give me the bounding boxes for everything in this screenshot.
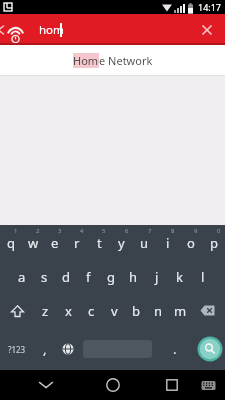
button[interactable]: p: [202, 225, 225, 260]
button[interactable]: f: [77, 260, 99, 294]
button[interactable]: [199, 22, 215, 38]
button[interactable]: [162, 375, 182, 395]
staticText: ,: [43, 340, 47, 358]
button[interactable]: .: [156, 328, 194, 370]
staticText: q: [7, 234, 15, 252]
staticText: 9: [194, 227, 198, 235]
button[interactable]: [36, 375, 56, 395]
staticText: d: [62, 268, 70, 286]
staticText: t: [97, 234, 102, 252]
button[interactable]: [191, 294, 225, 328]
staticText: .: [173, 340, 177, 358]
staticText: r: [74, 234, 80, 252]
staticText: 2: [36, 227, 40, 235]
staticText: a: [18, 268, 26, 286]
button[interactable]: h: [122, 260, 145, 294]
staticText: e Network: [99, 53, 153, 68]
staticText: 0: [217, 227, 221, 235]
button[interactable]: w: [22, 225, 44, 260]
staticText: b: [132, 302, 140, 320]
button[interactable]: n: [147, 294, 169, 328]
staticText: s: [41, 268, 48, 286]
button[interactable]: k: [168, 260, 191, 294]
button[interactable]: a: [11, 260, 33, 294]
staticText: l: [201, 268, 205, 286]
button[interactable]: i: [156, 225, 179, 260]
staticText: o: [187, 234, 195, 252]
button[interactable]: m: [169, 294, 191, 328]
button[interactable]: s: [33, 260, 55, 294]
staticText: c: [88, 302, 95, 320]
staticText: x: [65, 302, 72, 320]
button[interactable]: g: [99, 260, 122, 294]
button[interactable]: d: [55, 260, 77, 294]
button[interactable]: ,: [34, 328, 56, 370]
staticText: k: [176, 268, 183, 286]
staticText: y: [118, 234, 125, 252]
button[interactable]: t: [88, 225, 110, 260]
button[interactable]: [79, 328, 156, 370]
staticText: w: [28, 234, 39, 252]
staticText: ?123: [8, 344, 26, 355]
staticText: n: [154, 302, 163, 320]
staticText: e: [51, 234, 59, 252]
button[interactable]: [103, 375, 123, 395]
staticText: g: [107, 268, 115, 286]
button[interactable]: [199, 376, 217, 394]
button[interactable]: [194, 328, 225, 370]
staticText: u: [140, 234, 149, 252]
button[interactable]: j: [145, 260, 168, 294]
staticText: 5: [102, 227, 106, 235]
button[interactable]: ?123: [0, 328, 34, 370]
staticText: 8: [171, 227, 175, 235]
staticText: h: [129, 268, 138, 286]
button[interactable]: c: [80, 294, 103, 328]
staticText: 14:17: [198, 1, 222, 13]
staticText: 3: [58, 227, 62, 235]
button[interactable]: x: [57, 294, 80, 328]
staticText: Hom: [73, 53, 99, 68]
staticText: 7: [148, 227, 152, 235]
button[interactable]: y: [110, 225, 133, 260]
button[interactable]: q: [0, 225, 22, 260]
staticText: hom: [39, 22, 64, 38]
staticText: j: [155, 268, 159, 286]
staticText: m: [174, 302, 187, 320]
button[interactable]: u: [133, 225, 156, 260]
button[interactable]: Hom: [0, 45, 225, 76]
staticText: p: [210, 234, 218, 252]
staticText: z: [42, 302, 49, 320]
staticText: v: [111, 302, 118, 320]
staticText: 1: [14, 227, 18, 235]
staticText: f: [86, 268, 91, 286]
button[interactable]: r: [66, 225, 88, 260]
button[interactable]: z: [34, 294, 57, 328]
button[interactable]: l: [191, 260, 214, 294]
button[interactable]: b: [125, 294, 147, 328]
staticText: 4: [80, 227, 84, 235]
button[interactable]: v: [103, 294, 125, 328]
staticText: i: [166, 234, 170, 252]
button[interactable]: [56, 328, 79, 370]
staticText: 6: [125, 227, 129, 235]
button[interactable]: [0, 294, 34, 328]
button[interactable]: e: [44, 225, 66, 260]
button[interactable]: o: [179, 225, 202, 260]
